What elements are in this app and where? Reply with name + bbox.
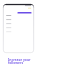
staticText: Increase your followers — [8, 57, 31, 65]
button[interactable]: Phone preview — [3, 4, 34, 53]
button[interactable]: Increase your followers — [8, 57, 31, 65]
